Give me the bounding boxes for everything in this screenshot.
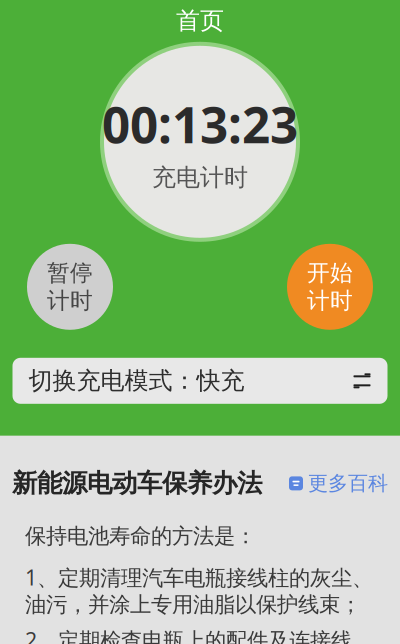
- button[interactable]: 开始: [287, 244, 373, 330]
- staticText: 更多百科: [308, 471, 388, 496]
- button[interactable]: 切换充电模式：快充: [12, 358, 387, 404]
- button[interactable]: 暂停: [27, 244, 113, 330]
- staticText: 计时: [307, 287, 353, 315]
- staticText: 新能源电动车保养办法: [12, 468, 262, 499]
- staticText: 充电计时: [152, 163, 248, 192]
- staticText: 切换充电模式：快充: [28, 366, 244, 396]
- staticText: 2、定期检查电瓶上的配件及连接线路；: [25, 626, 352, 644]
- staticText: 00:13:23: [102, 91, 298, 157]
- staticText: 计时: [47, 287, 93, 315]
- staticText: 保持电池寿命的方法是：: [25, 523, 256, 549]
- staticText: 暂停: [47, 259, 93, 287]
- staticText: 开始: [307, 259, 353, 287]
- staticText: 首页: [176, 6, 224, 36]
- button[interactable]: 更多百科: [289, 471, 388, 496]
- staticText: 1、定期清理汽车电瓶接线柱的灰尘、油污，并涂上专用油脂以保护线束；: [25, 563, 373, 618]
